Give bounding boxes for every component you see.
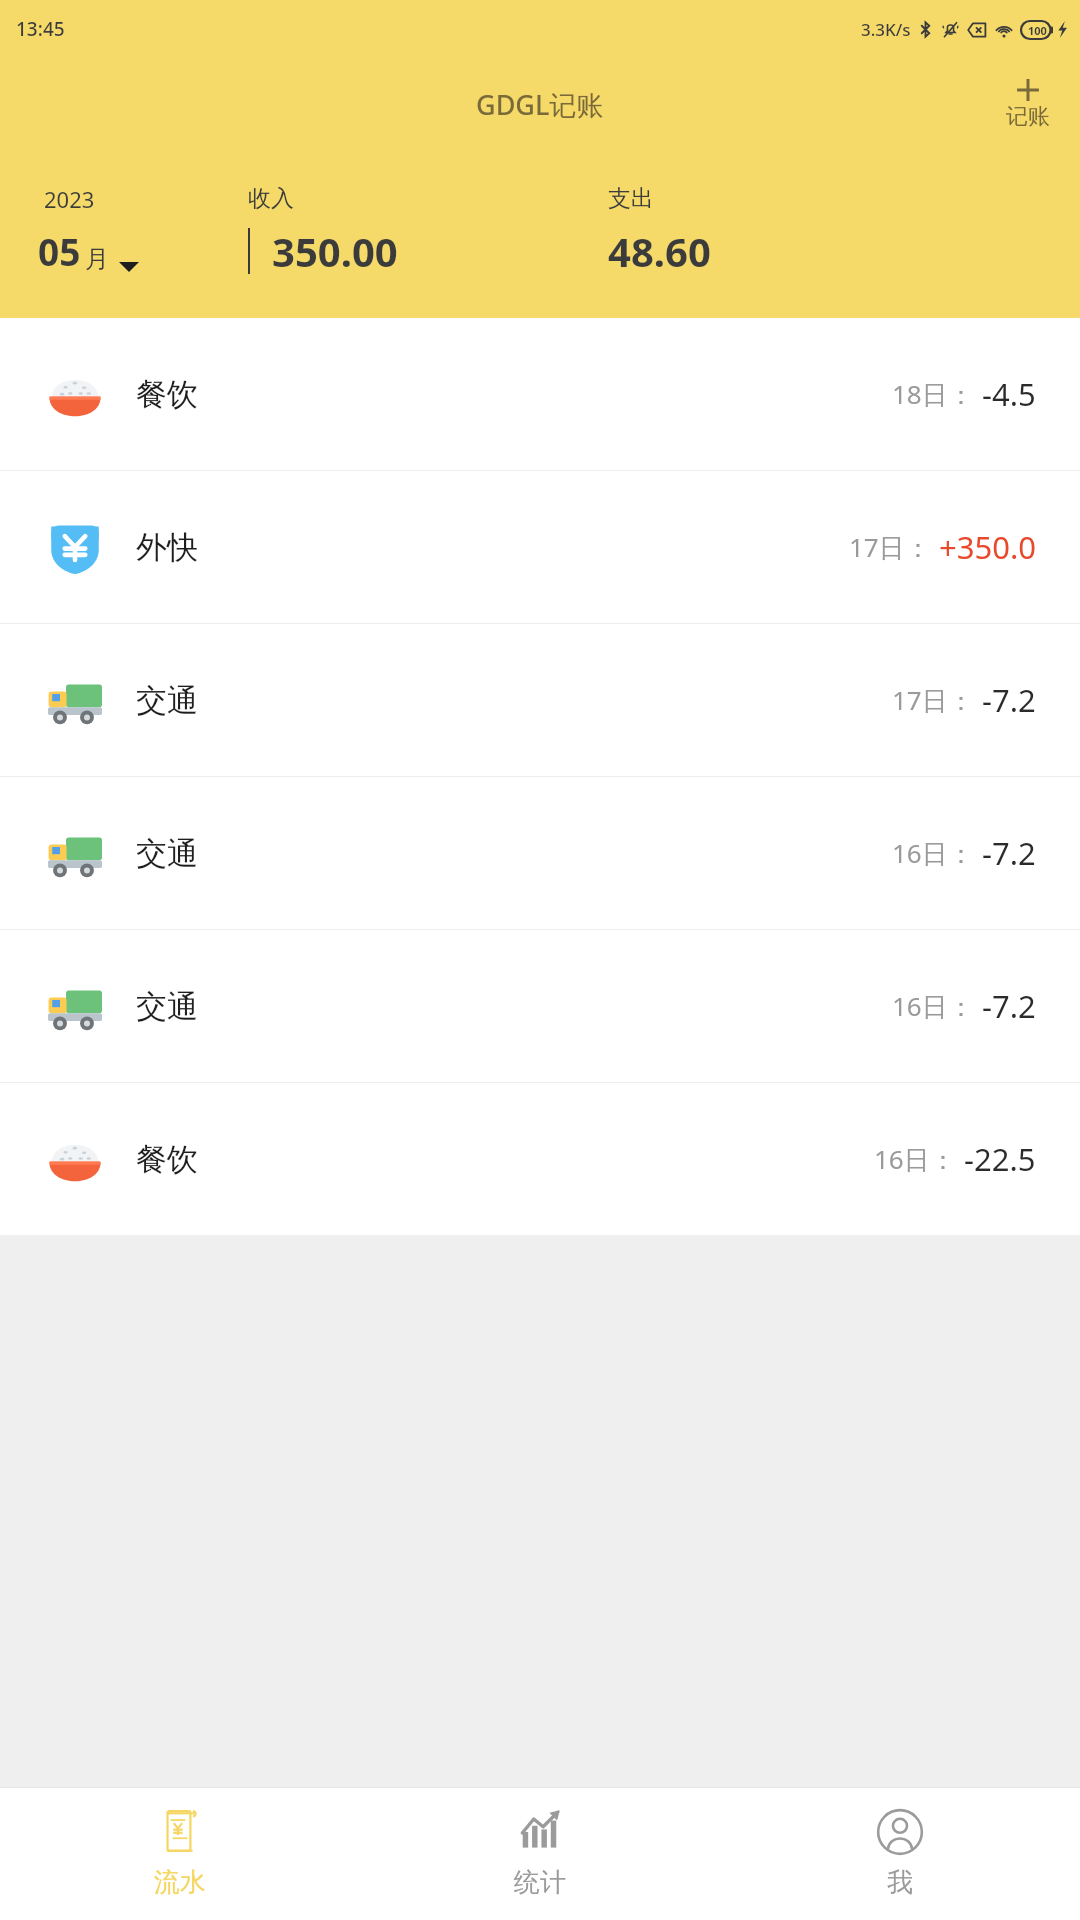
staticText: 统计 bbox=[514, 1866, 566, 1899]
staticText: 记账 bbox=[1006, 103, 1050, 131]
button[interactable]: 交通 bbox=[0, 930, 1080, 1082]
staticText: 13:45 bbox=[16, 16, 65, 42]
staticText: 16日： bbox=[892, 835, 974, 871]
button[interactable]: 交通 bbox=[0, 777, 1080, 929]
staticText: 收入 bbox=[248, 184, 294, 213]
staticText: +350.0 bbox=[939, 526, 1036, 568]
staticText: 48.60 bbox=[608, 224, 711, 278]
button[interactable]: 餐饮 bbox=[0, 318, 1080, 470]
staticText: 18日： bbox=[892, 376, 974, 412]
button[interactable]: 餐饮 bbox=[0, 1083, 1080, 1235]
staticText: 350.00 bbox=[272, 224, 398, 278]
staticText: 16日： bbox=[874, 1141, 956, 1177]
staticText: 100 bbox=[1028, 23, 1047, 38]
staticText: 17日： bbox=[892, 682, 974, 718]
staticText: GDGL记账 bbox=[476, 86, 604, 123]
staticText: -7.2 bbox=[982, 985, 1036, 1027]
staticText: -4.5 bbox=[982, 373, 1036, 415]
staticText: 交通 bbox=[136, 681, 198, 720]
staticText: 3.3K/s bbox=[861, 18, 911, 41]
staticText: 月 bbox=[85, 244, 109, 274]
staticText: 05 bbox=[38, 226, 81, 276]
staticText: 交通 bbox=[136, 834, 198, 873]
button[interactable]: 交通 bbox=[0, 624, 1080, 776]
button[interactable]: 我 bbox=[720, 1788, 1080, 1920]
button[interactable]: 外快 bbox=[0, 471, 1080, 623]
staticText: 支出 bbox=[608, 184, 654, 213]
staticText: 我 bbox=[887, 1866, 913, 1899]
staticText: 2023 bbox=[44, 184, 95, 214]
staticText: 17日： bbox=[849, 529, 931, 565]
staticText: -7.2 bbox=[982, 832, 1036, 874]
button[interactable]: 统计 bbox=[360, 1788, 720, 1920]
staticText: -22.5 bbox=[964, 1138, 1036, 1180]
staticText: 交通 bbox=[136, 987, 198, 1026]
staticText: 流水 bbox=[154, 1866, 206, 1899]
staticText: 餐饮 bbox=[136, 375, 198, 414]
staticText: -7.2 bbox=[982, 679, 1036, 721]
button[interactable]: 流水 bbox=[0, 1788, 360, 1920]
button[interactable]: 05 bbox=[38, 226, 248, 276]
button[interactable]: 记账 bbox=[998, 75, 1058, 133]
staticText: 餐饮 bbox=[136, 1140, 198, 1179]
staticText: 外快 bbox=[136, 528, 198, 567]
staticText: 16日： bbox=[892, 988, 974, 1024]
